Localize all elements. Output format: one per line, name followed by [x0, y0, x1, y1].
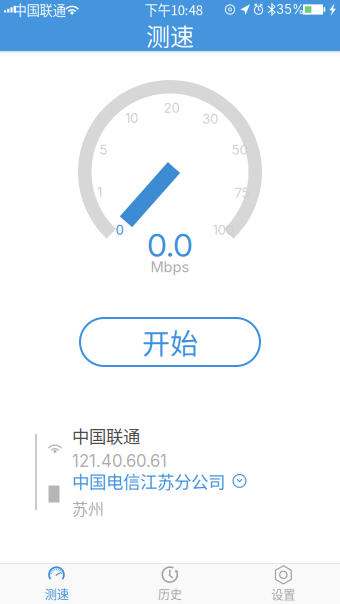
- staticText: 中国联通: [13, 0, 65, 19]
- staticText: 121.40.60.61: [72, 451, 167, 471]
- staticText: 中国联通: [72, 423, 140, 448]
- button[interactable]: 历史: [113, 564, 227, 604]
- staticText: 设置: [271, 586, 295, 603]
- staticText: 100: [212, 222, 233, 238]
- staticText: 中国电信江苏分公司: [72, 468, 225, 493]
- staticText: 30: [202, 111, 218, 127]
- staticText: 50: [231, 142, 247, 158]
- staticText: 5: [99, 142, 107, 158]
- staticText: 0: [115, 222, 123, 238]
- staticText: Mbps: [150, 258, 189, 276]
- button[interactable]: 中国电信江苏分公司: [46, 477, 306, 511]
- staticText: 20: [163, 100, 179, 116]
- staticText: 苏州: [72, 496, 104, 520]
- staticText: 35%: [276, 2, 304, 17]
- staticText: 1: [97, 184, 102, 200]
- button[interactable]: 开始: [80, 318, 260, 366]
- staticText: 0.0: [147, 226, 193, 264]
- staticText: 10: [125, 110, 138, 126]
- staticText: 下午10:48: [144, 0, 202, 19]
- staticText: 开始: [142, 322, 198, 362]
- button[interactable]: 测速: [0, 564, 113, 604]
- staticText: 测速: [146, 18, 194, 52]
- staticText: 测速: [45, 585, 69, 603]
- button[interactable]: 设置: [227, 564, 340, 604]
- staticText: 75: [234, 185, 249, 201]
- staticText: 历史: [158, 585, 182, 603]
